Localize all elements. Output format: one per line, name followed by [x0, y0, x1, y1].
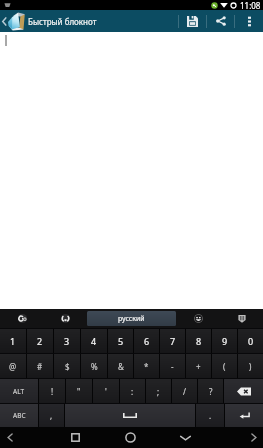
button[interactable]: '	[93, 379, 119, 403]
button[interactable]: ;	[146, 379, 171, 403]
button[interactable]: Space	[65, 404, 195, 427]
staticText: /	[183, 386, 186, 397]
button[interactable]: ABC	[0, 404, 38, 427]
button[interactable]: (	[212, 354, 237, 378]
staticText: 7	[170, 335, 176, 347]
button[interactable]: Go	[0, 309, 44, 328]
button[interactable]: Forward	[244, 427, 263, 448]
button[interactable]: #	[27, 354, 53, 378]
button[interactable]: 2	[27, 329, 53, 353]
staticText: ,	[50, 410, 53, 421]
staticText: ALT	[13, 387, 25, 396]
button[interactable]: Recents	[47, 427, 103, 448]
staticText: 0	[248, 335, 254, 347]
staticText: 9	[222, 335, 228, 347]
button[interactable]: 3	[54, 329, 80, 353]
staticText: @	[9, 361, 17, 372]
button[interactable]: 1	[0, 329, 26, 353]
button[interactable]: ?	[198, 379, 223, 403]
staticText: &	[118, 361, 124, 372]
staticText: *	[144, 361, 149, 372]
staticText: $	[65, 361, 70, 372]
button[interactable]: !	[39, 379, 65, 403]
staticText: )	[249, 361, 252, 372]
staticText: .	[209, 410, 212, 421]
button[interactable]: русский	[87, 311, 176, 326]
staticText: -	[171, 361, 174, 372]
staticText: !	[51, 386, 54, 397]
staticText: ?	[209, 386, 213, 397]
button[interactable]: ALT	[0, 379, 38, 403]
staticText: Быстрый блокнот	[28, 16, 97, 27]
button[interactable]: $	[54, 354, 80, 378]
button[interactable]: "	[66, 379, 92, 403]
button[interactable]: 9	[212, 329, 237, 353]
button[interactable]: 5	[108, 329, 133, 353]
button[interactable]: Hide keyboard	[158, 427, 213, 448]
button[interactable]: :	[120, 379, 145, 403]
staticText: 6	[144, 335, 150, 347]
button[interactable]: 4	[81, 329, 107, 353]
button[interactable]: Enter	[225, 404, 263, 427]
button[interactable]: Navigate up	[0, 10, 7, 32]
button[interactable]: +	[186, 354, 211, 378]
button[interactable]: Backspace	[224, 379, 263, 403]
button[interactable]: More options	[235, 10, 263, 32]
button[interactable]: Emoji	[176, 309, 220, 328]
button[interactable]: Back	[0, 427, 19, 448]
button[interactable]: &	[108, 354, 133, 378]
staticText: русский	[118, 314, 145, 324]
staticText: +	[196, 361, 201, 372]
staticText: 8	[196, 335, 202, 347]
staticText: 5	[118, 335, 124, 347]
button[interactable]: 0	[238, 329, 263, 353]
staticText: '	[105, 386, 107, 397]
button[interactable]: 8	[186, 329, 211, 353]
staticText: 2	[37, 335, 43, 347]
button[interactable]: @	[0, 354, 26, 378]
staticText: %	[91, 361, 98, 372]
staticText: (	[223, 361, 226, 372]
button[interactable]: %	[81, 354, 107, 378]
button[interactable]: 6	[134, 329, 159, 353]
button[interactable]: -	[160, 354, 185, 378]
button[interactable]: Clipboard	[220, 309, 263, 328]
staticText: ABC	[13, 411, 26, 420]
staticText: #	[37, 361, 43, 372]
button[interactable]: Home	[103, 427, 158, 448]
button[interactable]: 7	[160, 329, 185, 353]
button[interactable]: )	[238, 354, 263, 378]
staticText: 4	[91, 335, 97, 347]
button[interactable]: .	[196, 404, 224, 427]
staticText: 1	[10, 335, 16, 347]
button[interactable]: ,	[39, 404, 64, 427]
button[interactable]: *	[134, 354, 159, 378]
staticText: 3	[64, 335, 70, 347]
staticText: "	[77, 386, 81, 397]
staticText: :	[131, 386, 134, 397]
staticText: ;	[157, 386, 160, 397]
button[interactable]: Save	[179, 10, 206, 32]
button[interactable]: Voice input	[44, 309, 87, 328]
button[interactable]: Share	[207, 10, 234, 32]
staticText: 11:08	[240, 0, 261, 10]
button[interactable]: /	[172, 379, 197, 403]
